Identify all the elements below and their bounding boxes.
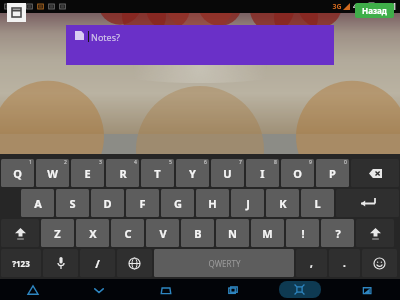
staticText: T	[154, 166, 161, 181]
button[interactable]: key	[336, 189, 399, 217]
staticText: 8	[274, 159, 277, 166]
button[interactable]: Recents	[199, 279, 266, 300]
staticText: 6	[204, 159, 207, 166]
staticText: 2	[64, 159, 67, 166]
staticText: B	[194, 226, 202, 241]
staticText: L	[314, 196, 321, 211]
button[interactable]: N	[216, 219, 249, 247]
button[interactable]: H	[196, 189, 229, 217]
button[interactable]: Z	[41, 219, 74, 247]
button[interactable]: E	[71, 159, 104, 187]
button[interactable]: U	[211, 159, 244, 187]
button[interactable]: key	[154, 249, 294, 277]
staticText: F	[139, 196, 146, 211]
staticText: O	[293, 166, 302, 181]
staticText: K	[279, 196, 287, 211]
button[interactable]: X	[76, 219, 109, 247]
staticText: Z	[54, 226, 61, 241]
button[interactable]: D	[91, 189, 124, 217]
button[interactable]: R	[106, 159, 139, 187]
button[interactable]: O	[281, 159, 314, 187]
staticText: 4	[134, 159, 137, 166]
staticText: R	[119, 166, 127, 181]
button[interactable]: ,	[296, 249, 327, 277]
staticText: 5	[169, 159, 172, 166]
button[interactable]: W	[36, 159, 69, 187]
staticText: ?123	[12, 258, 30, 269]
button[interactable]: B	[181, 219, 214, 247]
staticText: C	[124, 226, 132, 241]
staticText: Назад	[362, 5, 387, 16]
staticText: M	[262, 226, 273, 241]
button[interactable]: I	[246, 159, 279, 187]
staticText: U	[223, 166, 232, 181]
button[interactable]: Home	[132, 279, 199, 300]
button[interactable]: P	[316, 159, 349, 187]
button[interactable]: V	[146, 219, 179, 247]
button[interactable]: .	[329, 249, 360, 277]
button[interactable]: Q	[1, 159, 34, 187]
button[interactable]: Back	[0, 279, 66, 300]
button[interactable]: Назад	[355, 3, 394, 18]
staticText: Notes?	[91, 31, 120, 43]
staticText: X	[89, 226, 97, 241]
button[interactable]: key	[356, 219, 394, 247]
button[interactable]: G	[161, 189, 194, 217]
button[interactable]: A	[21, 189, 54, 217]
staticText: 12:41	[376, 1, 397, 12]
staticText: ?	[335, 226, 341, 241]
staticText: W	[47, 166, 58, 181]
button[interactable]: C	[111, 219, 144, 247]
staticText: 0	[344, 159, 347, 166]
staticText: .	[343, 256, 346, 270]
staticText: QWERTY	[208, 258, 241, 269]
staticText: I	[260, 166, 265, 181]
staticText: 9	[309, 159, 312, 166]
button[interactable]: J	[231, 189, 264, 217]
staticText: Q	[13, 166, 22, 181]
staticText: S	[69, 196, 76, 211]
staticText: A	[34, 196, 42, 211]
button[interactable]: key	[1, 219, 39, 247]
staticText: 3	[99, 159, 102, 166]
button[interactable]: ?123	[1, 249, 41, 277]
button[interactable]: S	[56, 189, 89, 217]
button[interactable]: key	[117, 249, 152, 277]
button[interactable]: key	[362, 249, 397, 277]
staticText: H	[208, 196, 217, 211]
staticText: J	[246, 196, 250, 211]
button[interactable]: L	[301, 189, 334, 217]
button[interactable]: key	[351, 159, 399, 187]
staticText: G	[174, 196, 182, 211]
button[interactable]: App window	[7, 3, 26, 22]
button[interactable]: key	[43, 249, 78, 277]
button[interactable]: Fullscreen	[333, 279, 400, 300]
staticText: 42%	[353, 2, 367, 12]
button[interactable]: ?	[321, 219, 354, 247]
button[interactable]: !	[286, 219, 319, 247]
staticText: D	[103, 196, 112, 211]
button[interactable]: M	[251, 219, 284, 247]
staticText: 1	[29, 159, 32, 166]
staticText: P	[329, 166, 336, 181]
staticText: E	[84, 166, 91, 181]
button[interactable]: Hide keyboard	[66, 279, 132, 300]
button[interactable]: /	[80, 249, 115, 277]
button[interactable]: Resize window	[266, 279, 333, 300]
staticText: 3G	[332, 2, 342, 12]
staticText: N	[228, 226, 237, 241]
staticText: Y	[189, 166, 196, 181]
button[interactable]: K	[266, 189, 299, 217]
button[interactable]: T	[141, 159, 174, 187]
staticText: ,	[310, 256, 313, 270]
button[interactable]: Y	[176, 159, 209, 187]
staticText: V	[159, 226, 167, 241]
button[interactable]: Notes?	[66, 25, 334, 65]
staticText: /	[95, 256, 100, 271]
staticText: 7	[239, 159, 242, 166]
staticText: !	[301, 226, 305, 241]
button[interactable]: F	[126, 189, 159, 217]
